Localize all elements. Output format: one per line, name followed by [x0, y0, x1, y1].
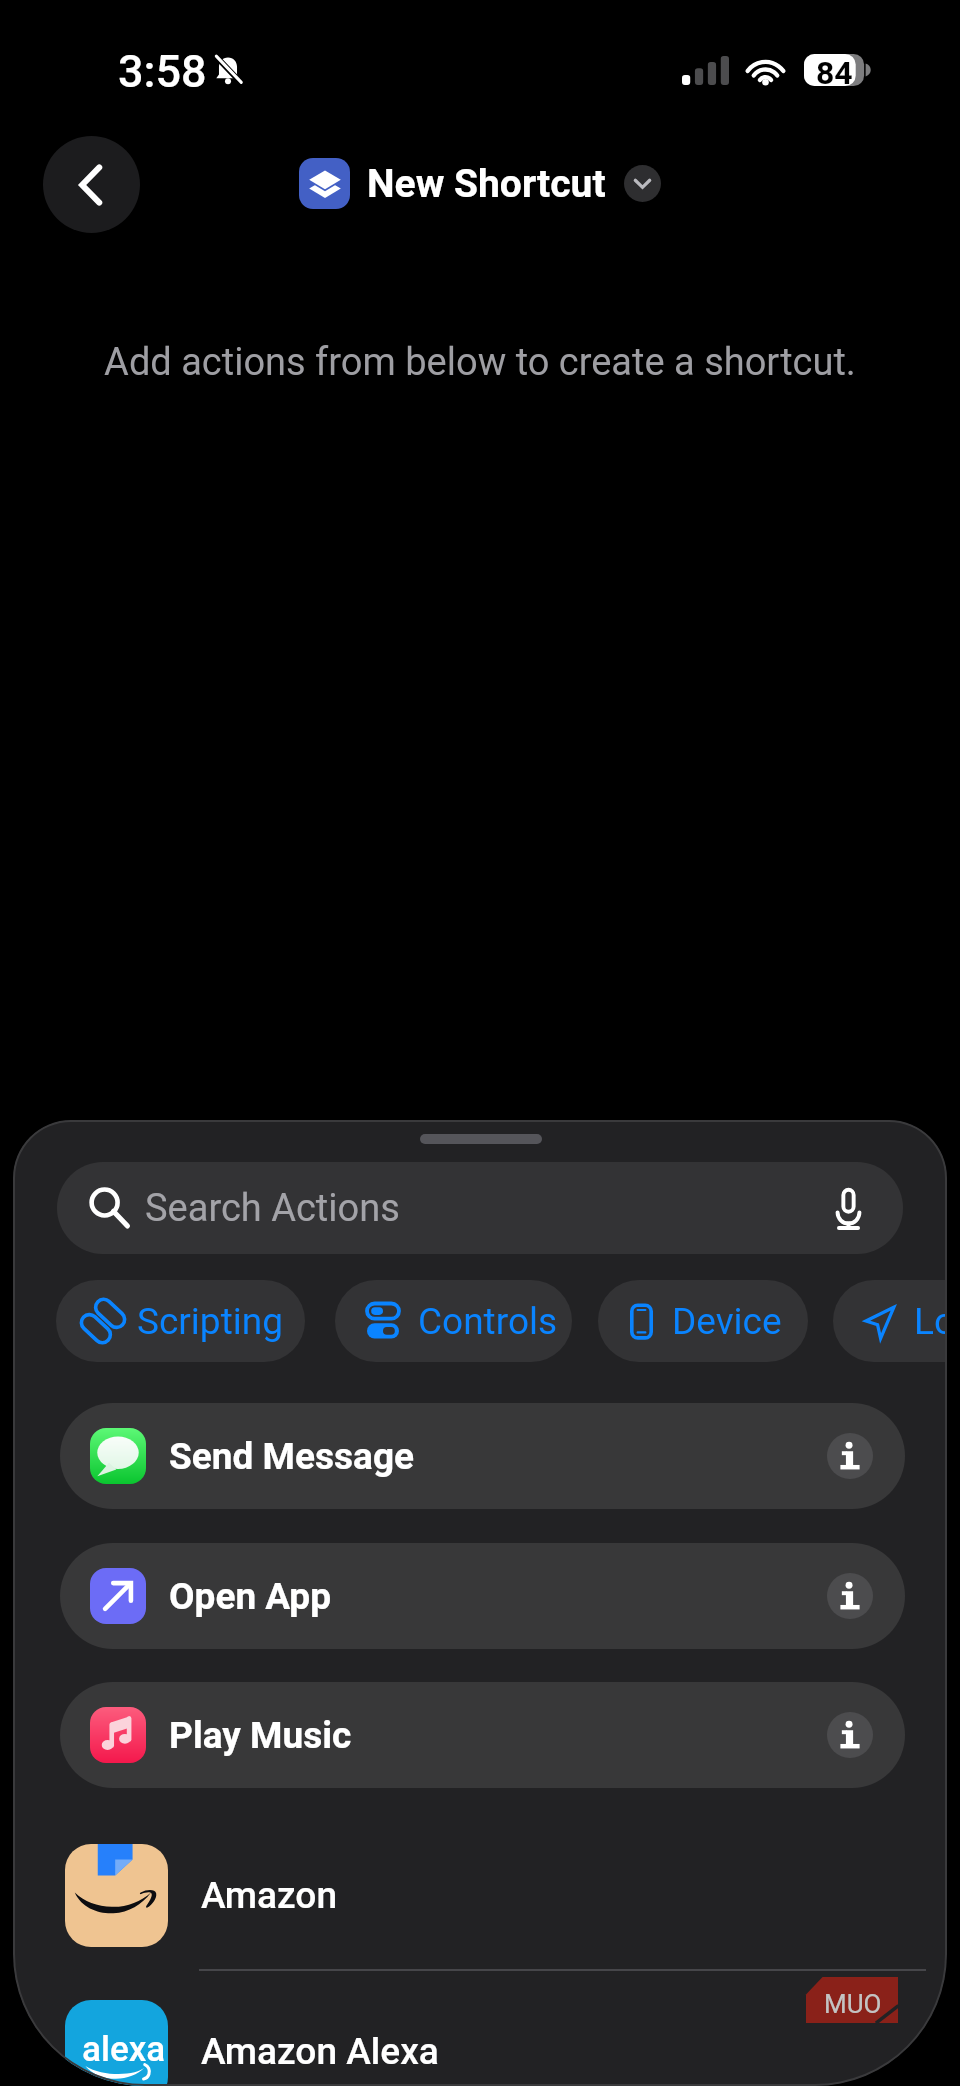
button[interactable]: Play Music	[60, 1682, 905, 1788]
button[interactable]: Search Actions	[57, 1162, 903, 1254]
button[interactable]: Shortcut options	[624, 165, 661, 202]
staticText: New Shortcut	[367, 161, 606, 207]
staticText: Amazon Alexa	[201, 2030, 439, 2073]
button[interactable]: Controls	[335, 1280, 572, 1362]
button[interactable]: Location	[833, 1280, 947, 1362]
button[interactable]: Amazon	[65, 1830, 925, 1960]
button[interactable]: Info about Open App	[827, 1573, 873, 1619]
button[interactable]: Send Message	[60, 1403, 905, 1509]
button[interactable]: alexa	[65, 1986, 925, 2086]
button[interactable]: Info about Send Message	[827, 1433, 873, 1479]
button[interactable]: Scripting	[56, 1280, 305, 1362]
staticText: Amazon	[201, 1874, 337, 1917]
staticText: 3:58	[118, 45, 207, 98]
staticText: Search Actions	[145, 1186, 400, 1231]
staticText: alexa	[82, 2029, 166, 2070]
staticText: Scripting	[137, 1300, 283, 1343]
staticText: Open App	[169, 1575, 332, 1618]
staticText: Play Music	[169, 1714, 352, 1757]
button[interactable]: Open App	[60, 1543, 905, 1649]
staticText: Location	[914, 1300, 947, 1343]
staticText: Controls	[418, 1300, 558, 1343]
staticText: Device	[672, 1300, 782, 1343]
staticText: MUO	[824, 1989, 882, 2019]
staticText: Add actions from below to create a short…	[0, 340, 960, 385]
button[interactable]: Info about Play Music	[827, 1712, 873, 1758]
button[interactable]: Device	[598, 1280, 808, 1362]
staticText: 84	[816, 54, 853, 86]
button[interactable]: Back	[43, 136, 140, 233]
staticText: Send Message	[169, 1435, 415, 1478]
